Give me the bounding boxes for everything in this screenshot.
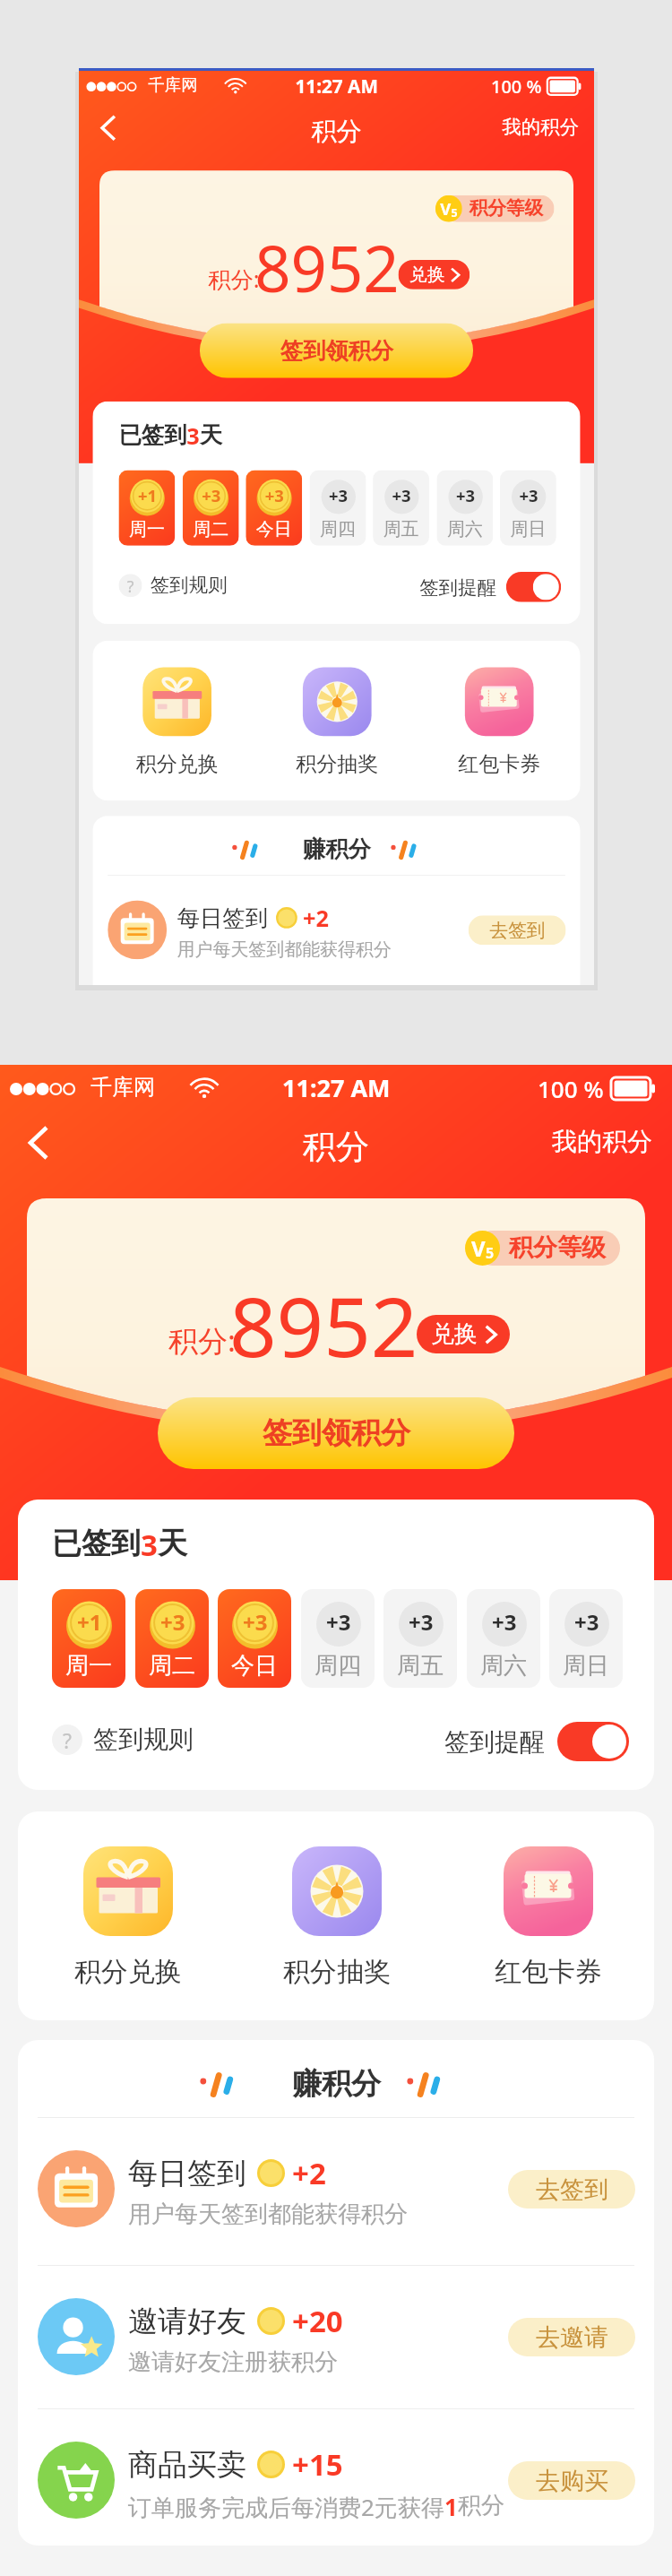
button[interactable]: 邀请好友 (18, 2265, 654, 2408)
button[interactable]: +1 (52, 1589, 125, 1688)
staticText: 签到规则 (93, 1724, 194, 1755)
staticText: 5 (451, 205, 458, 220)
staticText: 积分等级 (509, 1232, 606, 1263)
button[interactable]: +3 (301, 1589, 375, 1688)
staticText: 8952 (229, 1269, 418, 1381)
button[interactable]: +1 (119, 470, 175, 546)
button[interactable]: 我的积分 (498, 111, 583, 143)
staticText: 订单服务完成后每消费2元获得 (128, 2491, 444, 2523)
button[interactable]: 积分抽奖 (284, 661, 390, 785)
staticText: 每日签到 (177, 904, 268, 933)
staticText: 周四 (314, 1651, 361, 1681)
button[interactable]: 积分兑换 (59, 1838, 197, 2000)
staticText: 1 (444, 2491, 458, 2522)
button[interactable]: 签到领积分 (158, 1397, 514, 1469)
staticText: V (440, 197, 451, 220)
button[interactable]: 商品买卖 (18, 2408, 654, 2546)
staticText: 邀请好友注册获积分 (128, 2347, 338, 2377)
staticText: 去购买 (536, 2466, 608, 2496)
button[interactable]: +3 (500, 470, 556, 546)
button[interactable]: 每日签到 (93, 875, 580, 985)
button[interactable]: 积分兑换 (124, 661, 230, 785)
button[interactable]: 签到领积分 (200, 323, 473, 378)
staticText: 签到规则 (150, 573, 227, 597)
staticText: ? (63, 1726, 72, 1754)
staticText: 周六 (447, 518, 483, 540)
staticText: +1 (77, 1607, 102, 1637)
staticText: +3 (202, 484, 221, 507)
button[interactable] (443, 195, 554, 222)
staticText: 积分抽奖 (296, 750, 378, 777)
button[interactable]: +3 (310, 470, 366, 546)
staticText: 周一 (129, 518, 165, 540)
button[interactable]: +3 (383, 1589, 457, 1688)
staticText: +20 (292, 2301, 343, 2341)
button[interactable]: +3 (218, 1589, 291, 1688)
staticText: 邀请好友 (128, 2303, 246, 2340)
button[interactable]: 积分抽奖 (268, 1838, 406, 2000)
button[interactable]: ? (52, 1724, 194, 1755)
staticText: 每日签到 (128, 2155, 246, 2192)
button[interactable]: 每日签到 (18, 2117, 654, 2260)
staticText: 用户每天签到都能获得积分 (177, 938, 391, 961)
staticText: 商品买卖 (128, 2446, 246, 2484)
staticText: +3 (243, 1607, 268, 1637)
staticText: 积分 (458, 2491, 504, 2520)
staticText: 周日 (563, 1651, 609, 1681)
staticText: 已签到 (119, 421, 187, 450)
button[interactable]: 去购买 (508, 2461, 635, 2500)
staticText: 积分兑换 (136, 750, 218, 777)
staticText: +3 (326, 1607, 351, 1637)
staticText: +3 (160, 1607, 185, 1637)
button[interactable]: 红包卡券 (479, 1838, 617, 2000)
staticText: 我的积分 (502, 115, 579, 139)
button[interactable]: +3 (183, 470, 239, 546)
staticText: 今日 (256, 518, 292, 540)
button[interactable]: +3 (549, 1589, 623, 1688)
button[interactable]: +3 (135, 1589, 209, 1688)
staticText: 周五 (383, 518, 419, 540)
button[interactable]: 去邀请 (508, 2318, 635, 2356)
staticText: 5 (486, 1243, 495, 1263)
button[interactable]: +3 (437, 470, 493, 546)
button[interactable]: +3 (467, 1589, 540, 1688)
button[interactable] (475, 1231, 620, 1266)
staticText: 今日 (231, 1651, 278, 1681)
button[interactable]: 去签到 (508, 2170, 635, 2209)
staticText: 积分等级 (469, 197, 543, 220)
staticText: 11:27 AM (295, 73, 378, 98)
staticText: +3 (456, 484, 475, 507)
staticText: 已签到 (52, 1525, 141, 1562)
staticText: +3 (392, 484, 411, 507)
staticText: 积分 (303, 1126, 369, 1168)
button[interactable]: Back (11, 1115, 66, 1171)
button[interactable]: +3 (373, 470, 429, 546)
button[interactable]: Back (87, 107, 130, 149)
staticText: 积分兑换 (74, 1955, 182, 1989)
staticText: 红包卡券 (458, 750, 540, 777)
button[interactable]: Sign-in reminder toggle (506, 572, 561, 602)
staticText: 8952 (255, 225, 400, 311)
button[interactable]: +3 (246, 470, 302, 546)
staticText: 签到领积分 (280, 336, 393, 365)
staticText: 积分: (168, 1320, 236, 1361)
staticText: +3 (265, 484, 284, 507)
staticText: 兑换 (409, 263, 445, 286)
button[interactable]: 兑换 (398, 260, 470, 289)
staticText: 用户每天签到都能获得积分 (128, 2200, 408, 2229)
staticText: 积分: (208, 264, 259, 295)
staticText: 天 (158, 1525, 187, 1562)
staticText: 签到领积分 (263, 1414, 410, 1452)
staticText: 去签到 (490, 919, 545, 942)
button[interactable]: Sign-in reminder toggle (557, 1722, 629, 1761)
staticText: 周二 (193, 518, 229, 540)
button[interactable]: ? (119, 573, 227, 597)
staticText: 我的积分 (552, 1126, 652, 1157)
staticText: 3 (187, 421, 200, 452)
staticText: ? (127, 575, 134, 597)
button[interactable]: 红包卡券 (446, 661, 552, 785)
button[interactable]: 去签到 (468, 915, 566, 945)
button[interactable]: 兑换 (417, 1315, 510, 1353)
button[interactable]: 我的积分 (547, 1120, 658, 1163)
staticText: 千库网 (90, 1074, 155, 1101)
